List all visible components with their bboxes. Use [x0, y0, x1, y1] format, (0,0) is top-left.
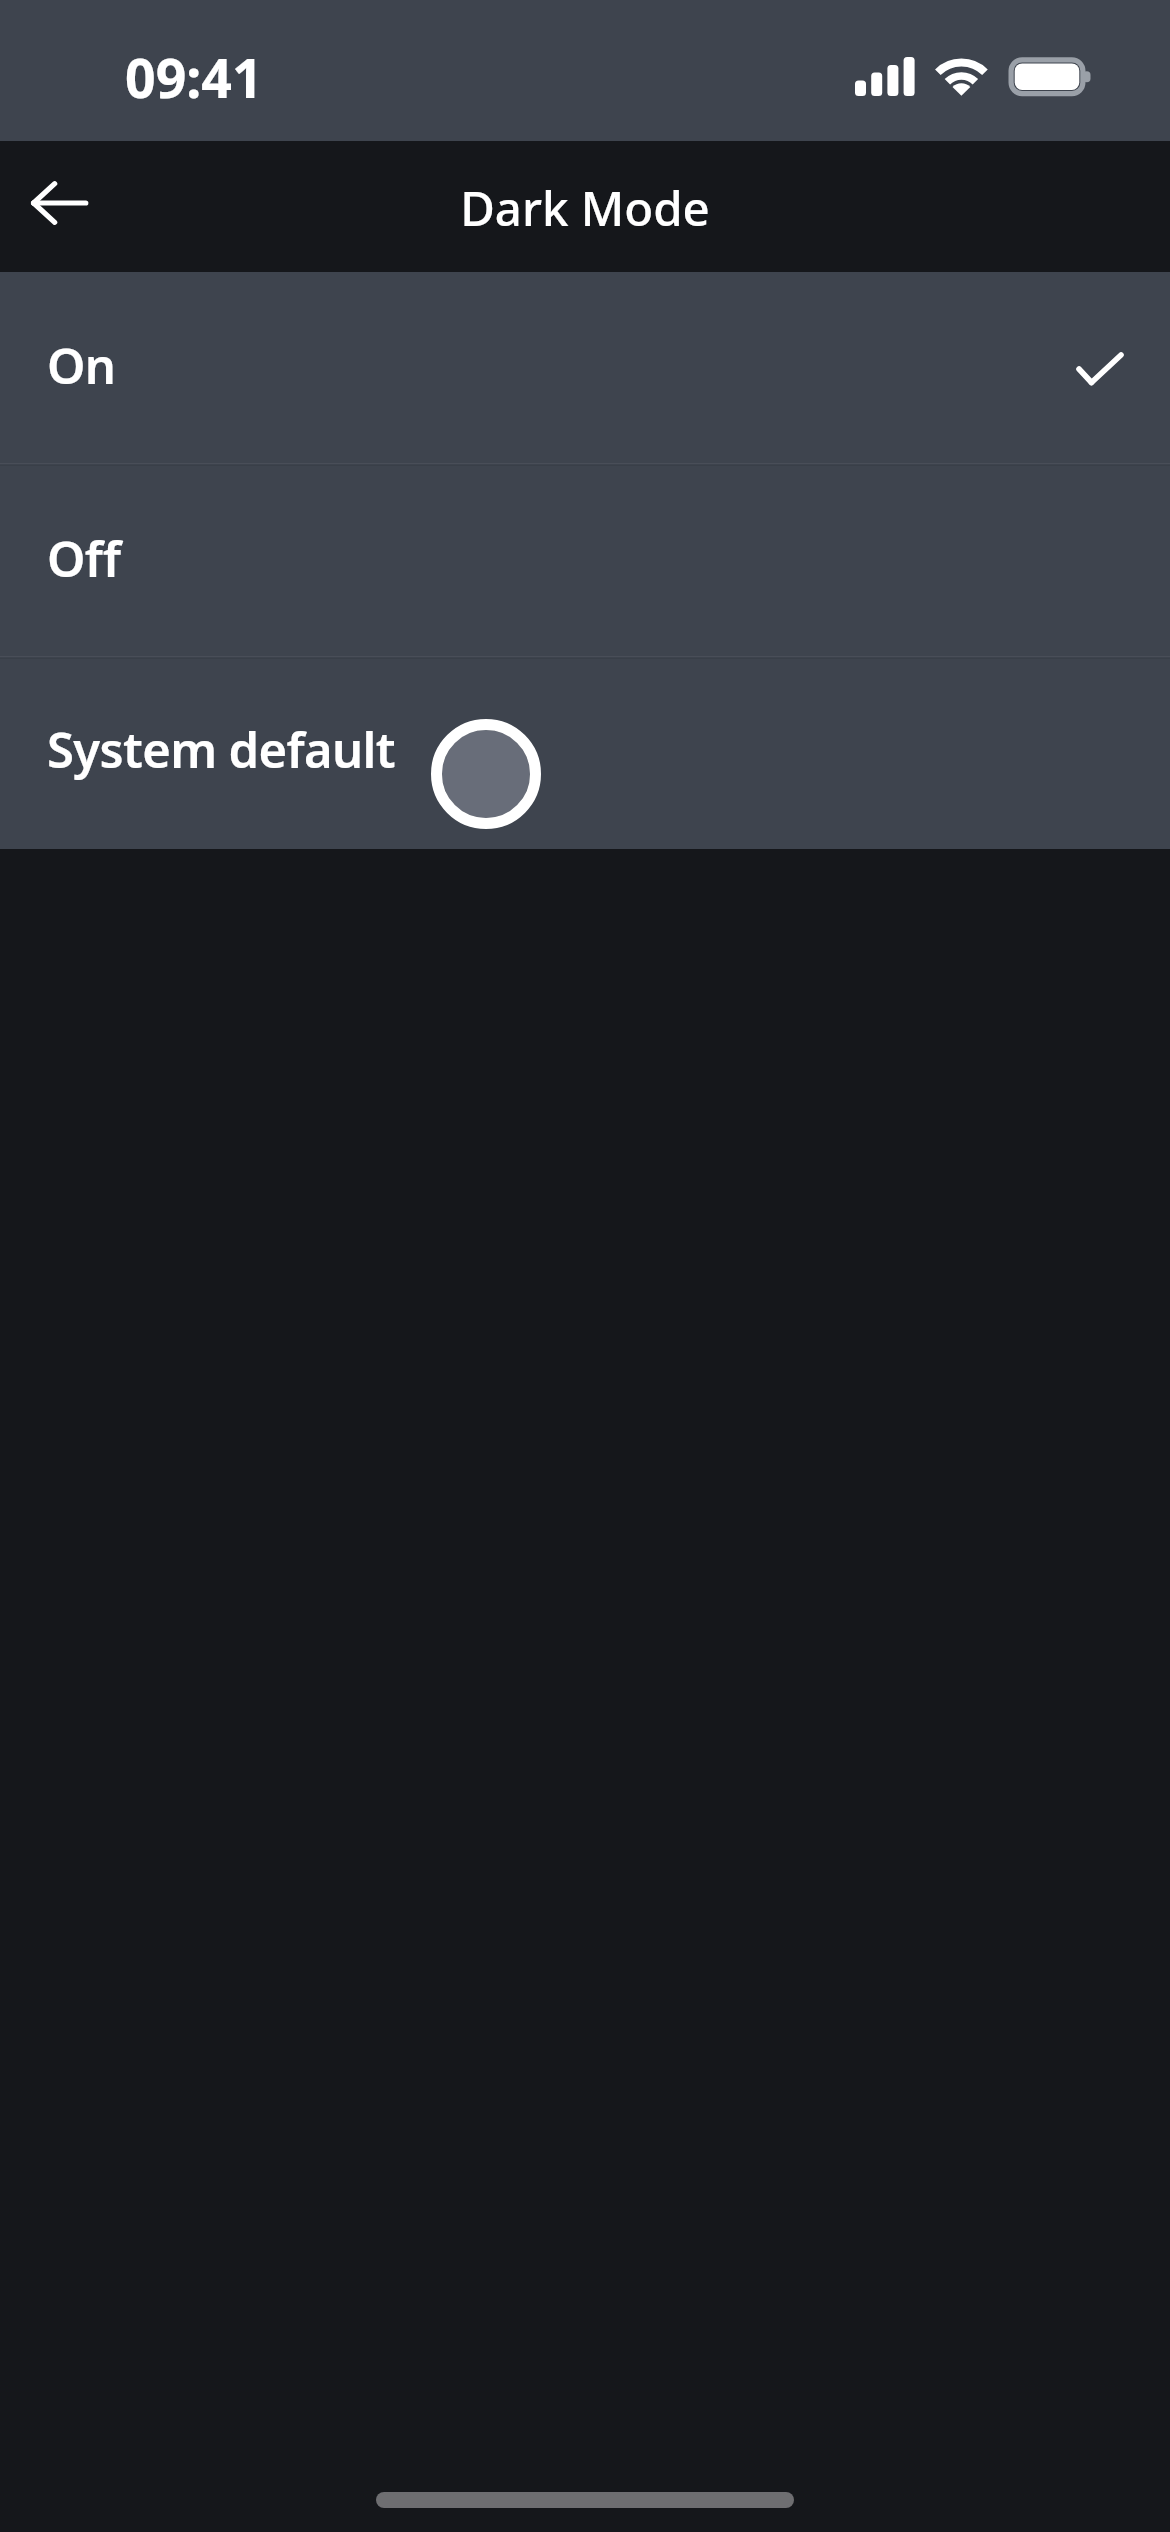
other: Loading — [431, 719, 541, 829]
staticText: Off — [47, 525, 121, 592]
button[interactable]: Back — [1, 145, 117, 261]
staticText: Dark Mode — [460, 175, 710, 240]
other: Selected — [1076, 352, 1122, 386]
staticText: 09:41 — [125, 41, 263, 114]
staticText: On — [47, 332, 116, 399]
button[interactable]: On — [0, 272, 1170, 465]
button[interactable]: System default — [0, 658, 1170, 849]
staticText: System default — [47, 716, 396, 783]
button[interactable]: Off — [0, 465, 1170, 658]
